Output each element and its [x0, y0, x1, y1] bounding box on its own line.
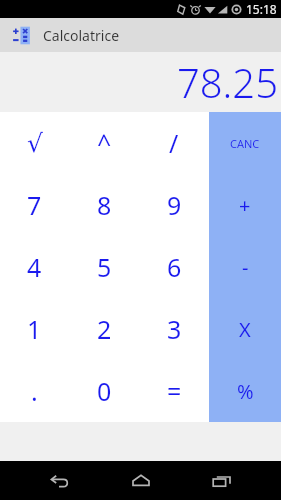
staticText: 6 — [167, 250, 182, 284]
staticText: 1 — [27, 312, 42, 346]
button[interactable]: CANC — [209, 112, 281, 174]
button[interactable]: + — [209, 174, 281, 236]
button[interactable]: Recent apps — [200, 461, 244, 500]
staticText: % — [237, 378, 254, 405]
staticText: ^ — [97, 126, 112, 160]
button[interactable]: = — [139, 360, 209, 422]
staticText: - — [242, 254, 249, 281]
staticText: 4 — [27, 250, 42, 284]
staticText: X — [239, 316, 251, 343]
button[interactable]: 7 — [0, 174, 69, 236]
staticText: 5 — [97, 250, 112, 284]
staticText: 9 — [167, 188, 182, 222]
button[interactable]: 4 — [0, 236, 69, 298]
button[interactable]: Home — [119, 461, 163, 500]
staticText: + — [239, 192, 251, 219]
staticText: 15:18 — [246, 1, 277, 17]
staticText: . — [31, 374, 38, 408]
button[interactable]: 0 — [69, 360, 139, 422]
button[interactable]: 8 — [69, 174, 139, 236]
button[interactable]: 2 — [69, 298, 139, 360]
button[interactable]: Back — [37, 461, 81, 500]
button[interactable]: 3 — [139, 298, 209, 360]
staticText: CANC — [230, 136, 260, 151]
staticText: 78.25 — [176, 55, 278, 109]
button[interactable]: 6 — [139, 236, 209, 298]
button[interactable]: 5 — [69, 236, 139, 298]
staticText: 8 — [97, 188, 112, 222]
staticText: / — [169, 126, 179, 160]
staticText: 7 — [27, 188, 42, 222]
button[interactable]: ^ — [69, 112, 139, 174]
button[interactable]: √ — [0, 112, 69, 174]
button[interactable]: - — [209, 236, 281, 298]
button[interactable]: X — [209, 298, 281, 360]
staticText: = — [167, 374, 182, 408]
staticText: Calcolatrice — [43, 26, 120, 45]
button[interactable]: 9 — [139, 174, 209, 236]
staticText: 3 — [167, 312, 182, 346]
button[interactable]: / — [139, 112, 209, 174]
staticText: 0 — [97, 374, 112, 408]
button[interactable]: 1 — [0, 298, 69, 360]
staticText: √ — [27, 129, 43, 158]
staticText: 2 — [97, 312, 112, 346]
button[interactable]: . — [0, 360, 69, 422]
button[interactable]: % — [209, 360, 281, 422]
